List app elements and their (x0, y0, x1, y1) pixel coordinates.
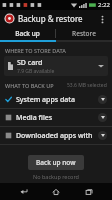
button[interactable]: Back up now (28, 155, 84, 170)
button[interactable]: Back up (0, 27, 55, 40)
staticText: Backup & restore (18, 13, 83, 24)
staticText: 53.6 MB selected (67, 82, 107, 89)
button[interactable]: More options (96, 13, 108, 25)
button[interactable]: Expand Media files (98, 113, 107, 122)
button[interactable]: Downloaded apps with (0, 127, 112, 144)
button[interactable]: Recent apps (80, 183, 98, 200)
button[interactable]: Back (15, 183, 33, 200)
staticText: 7.9 GB available (17, 68, 55, 75)
button[interactable]: System apps data (0, 91, 112, 108)
staticText: Restore (72, 29, 96, 38)
button[interactable]: Restore (56, 27, 112, 40)
button[interactable]: Expand Downloaded apps with (98, 131, 107, 140)
button[interactable]: Expand System apps data (98, 95, 107, 104)
staticText: 2:22 (98, 1, 110, 9)
staticText: SD card (17, 58, 43, 68)
staticText: Back up now (36, 158, 76, 167)
staticText: No backup record (33, 173, 79, 180)
staticText: Media files (16, 113, 53, 123)
button[interactable]: Home (47, 183, 65, 200)
button[interactable]: Media files (0, 109, 112, 126)
staticText: WHERE TO STORE DATA (5, 47, 66, 54)
staticText: WHAT TO BACK UP (5, 82, 54, 89)
button[interactable]: SD card (4, 56, 108, 76)
staticText: Downloaded apps with (16, 131, 93, 141)
button[interactable]: App icon (4, 13, 15, 24)
staticText: Back up (15, 29, 40, 38)
staticText: System apps data (16, 95, 76, 105)
